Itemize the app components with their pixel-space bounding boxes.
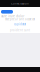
staticText: aute irure dolor [1, 14, 24, 18]
staticText: cupidatat [14, 22, 26, 26]
staticText: excepteur sint occaecat [5, 17, 35, 21]
button[interactable]: cupidatat [14, 22, 26, 26]
staticText: proident sunt [10, 28, 30, 32]
staticText: Conversation [11, 2, 29, 5]
